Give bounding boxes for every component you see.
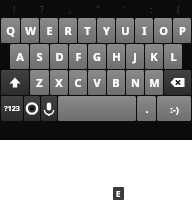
staticText: . (145, 101, 149, 116)
button[interactable]: Settings (24, 96, 40, 121)
button[interactable]: Q (1, 18, 20, 43)
button[interactable]: O (154, 18, 172, 43)
button[interactable]: N (126, 70, 144, 95)
staticText: E (116, 188, 121, 199)
staticText: A (16, 49, 24, 64)
button[interactable]: B (107, 70, 125, 95)
staticText: N (131, 75, 140, 90)
button[interactable]: ( (165, 0, 192, 18)
button[interactable]: R (59, 18, 77, 43)
staticText: X (55, 75, 63, 90)
staticText: Q (6, 23, 15, 38)
button[interactable]: A (10, 44, 29, 69)
button[interactable]: P (173, 18, 191, 43)
button[interactable]: Space (58, 96, 136, 121)
staticText: F (75, 49, 82, 64)
staticText: W (25, 23, 36, 38)
staticText: ?123 (4, 104, 20, 114)
button[interactable]: W (21, 18, 39, 43)
staticText: Y (103, 23, 110, 38)
button[interactable]: E (40, 18, 58, 43)
button[interactable]: Backspace (164, 70, 191, 95)
button[interactable]: :-) (157, 96, 191, 121)
button[interactable]: I (135, 18, 153, 43)
staticText: O (159, 23, 168, 38)
button[interactable]: " (84, 0, 111, 18)
button[interactable]: ?123 (1, 96, 23, 121)
staticText: P (179, 23, 186, 38)
button[interactable]: J (126, 44, 144, 69)
staticText: J (133, 49, 137, 64)
button[interactable]: X (50, 70, 68, 95)
staticText: ? (40, 3, 44, 15)
staticText: V (93, 75, 101, 90)
button[interactable]: ? (28, 0, 56, 18)
button[interactable]: S (30, 44, 49, 69)
button[interactable]: L (164, 44, 182, 69)
staticText: ' (123, 3, 126, 15)
staticText: R (64, 23, 72, 38)
staticText: T (84, 23, 91, 38)
staticText: " (96, 3, 100, 15)
staticText: E (46, 23, 53, 38)
staticText: Z (36, 75, 43, 90)
staticText: M (149, 75, 160, 90)
staticText: C (74, 75, 82, 90)
staticText: S (36, 49, 43, 64)
staticText: L (170, 49, 177, 64)
button[interactable]: G (88, 44, 106, 69)
staticText: I (142, 23, 147, 38)
button[interactable]: H (107, 44, 125, 69)
staticText: B (112, 75, 120, 90)
button[interactable]: Voice input (41, 96, 57, 121)
button[interactable]: Y (97, 18, 115, 43)
button[interactable]: M (145, 70, 163, 95)
button[interactable]: D (50, 44, 68, 69)
staticText: , (69, 3, 72, 15)
button[interactable]: K (145, 44, 163, 69)
button[interactable]: U (116, 18, 134, 43)
staticText: :-) (170, 103, 179, 115)
staticText: K (150, 49, 158, 64)
staticText: H (112, 49, 121, 64)
button[interactable]: F (69, 44, 87, 69)
button[interactable]: V (88, 70, 106, 95)
button[interactable]: ! (0, 0, 28, 18)
staticText: U (121, 23, 130, 38)
button[interactable]: E (113, 187, 124, 200)
button[interactable]: . (137, 96, 156, 121)
staticText: D (55, 49, 64, 64)
button[interactable]: T (78, 18, 96, 43)
button[interactable]: C (69, 70, 87, 95)
staticText: G (93, 49, 101, 64)
staticText: ( (177, 3, 180, 15)
button[interactable]: Shift (1, 70, 29, 95)
staticText: ! (13, 3, 16, 15)
button[interactable]: Z (30, 70, 49, 95)
staticText: : (150, 3, 153, 15)
